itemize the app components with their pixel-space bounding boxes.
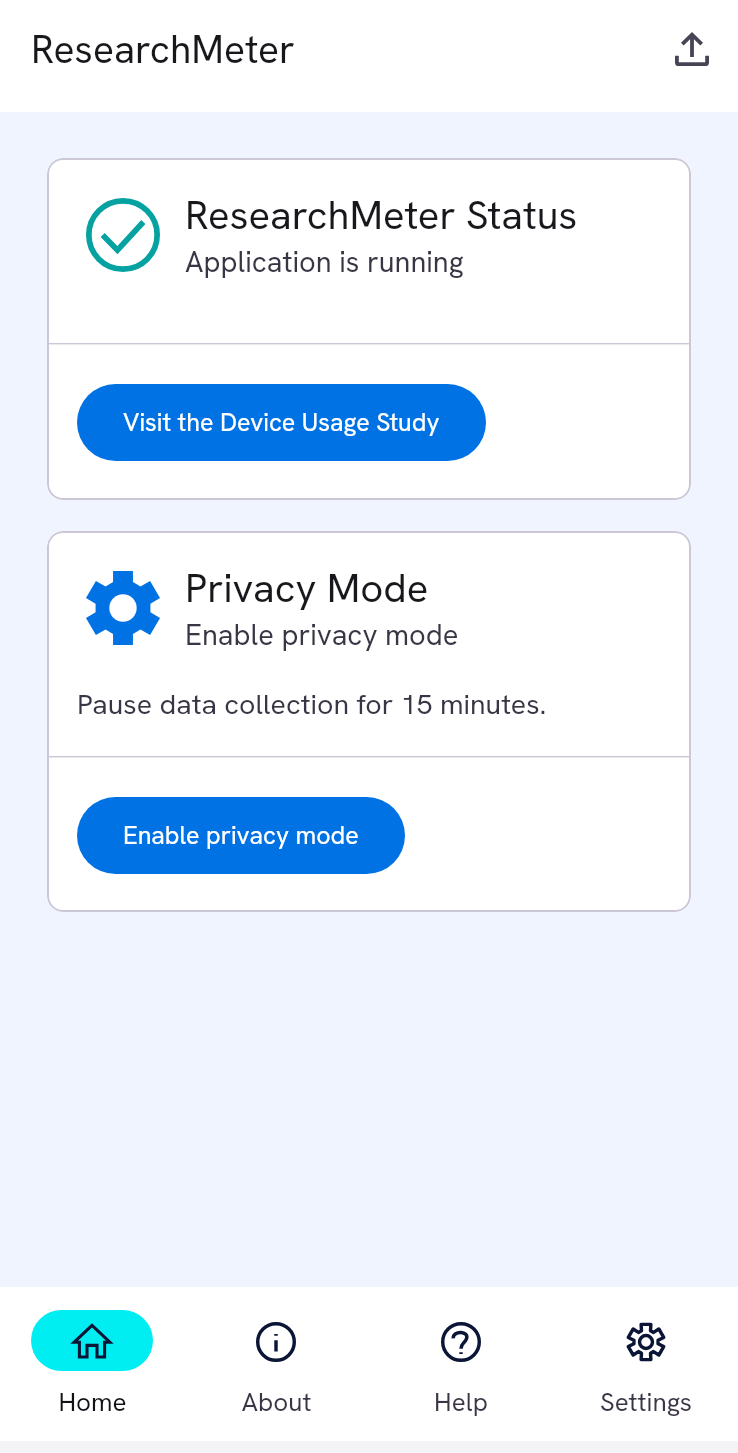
- button[interactable]: Share: [662, 19, 722, 79]
- staticText: Application is running: [185, 243, 464, 281]
- staticText: Help: [434, 1385, 488, 1419]
- staticText: Pause data collection for 15 minutes.: [77, 685, 547, 722]
- staticText: Enable privacy mode: [185, 616, 459, 654]
- button[interactable]: Settings: [553, 1310, 738, 1419]
- staticText: Settings: [600, 1385, 692, 1419]
- button[interactable]: Visit the Device Usage Study: [77, 384, 486, 461]
- staticText: Home: [58, 1385, 127, 1419]
- staticText: ResearchMeter: [31, 24, 295, 75]
- staticText: Visit the Device Usage Study: [123, 406, 440, 439]
- staticText: About: [241, 1385, 312, 1419]
- button[interactable]: Help: [368, 1310, 553, 1419]
- button[interactable]: Enable privacy mode: [77, 797, 405, 874]
- staticText: Privacy Mode: [185, 562, 429, 614]
- staticText: Enable privacy mode: [123, 819, 359, 852]
- staticText: ResearchMeter Status: [185, 189, 578, 241]
- button[interactable]: Home: [0, 1310, 184, 1419]
- button[interactable]: About: [184, 1310, 368, 1419]
